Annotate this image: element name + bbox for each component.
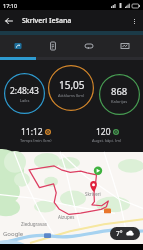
button[interactable]: Laps	[71, 35, 107, 57]
staticText: Laiks	[20, 98, 30, 103]
staticText: 120	[96, 126, 111, 138]
staticText: Attālums (km)	[58, 93, 85, 98]
staticText: Kalorijas	[111, 99, 128, 104]
button[interactable]: Overview	[0, 35, 35, 57]
staticText: 868	[111, 85, 128, 98]
staticText: Ziedugravas	[21, 221, 47, 227]
staticText: Google	[3, 230, 24, 238]
button[interactable]: Charts	[107, 35, 143, 57]
staticText: 2:48:43	[10, 85, 39, 97]
staticText: Aizupes	[58, 214, 75, 220]
button[interactable]: Back	[0, 12, 18, 30]
staticText: Temps (min /km)	[20, 138, 52, 143]
staticText: Skriveri Iešana	[22, 16, 72, 26]
staticText: Skriveri	[85, 191, 101, 197]
staticText: 15,05	[59, 78, 85, 92]
staticText: Augst. kāpi. (m)	[92, 138, 122, 143]
staticText: 11:12	[21, 126, 43, 138]
button[interactable]: 7°	[110, 227, 140, 240]
staticText: 7°	[116, 229, 123, 238]
button[interactable]: Details	[35, 35, 71, 57]
staticText: 17:10	[3, 2, 18, 9]
button[interactable]: More options	[125, 12, 143, 30]
